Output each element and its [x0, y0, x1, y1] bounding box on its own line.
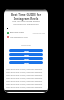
staticText: Low engagement hours: [10, 36, 28, 38]
staticText: Instagram Reels: [4, 17, 48, 21]
staticText: Lorem ipsum dolor sit amet, consectetur …: [6, 77, 46, 79]
staticText: and grow your audience fast: [4, 23, 48, 26]
staticText: Lorem ipsum dolor sit amet, consectetur …: [6, 92, 46, 93]
staticText: Lorem ipsum dolor sit amet, consectetur …: [6, 74, 46, 76]
staticText: Lorem ipsum dolor sit amet, consectetur …: [6, 71, 46, 73]
staticText: Open: [24, 58, 29, 60]
staticText: Open: [24, 50, 29, 52]
staticText: Lorem ipsum dolor sit amet, consectetur …: [6, 80, 46, 82]
button[interactable]: Open: [9, 49, 43, 52]
staticText: Open: [24, 54, 29, 56]
button[interactable]: Open: [9, 57, 43, 60]
staticText: updated just now: [32, 32, 45, 34]
staticText: Open: [24, 62, 29, 64]
staticText: Lorem ipsum dolor sit amet, consectetur …: [6, 68, 46, 70]
button[interactable]: Open: [9, 61, 43, 64]
staticText: Best Time GUIDE for: [4, 13, 48, 17]
staticText: Find your best posting window: [4, 20, 48, 23]
staticText: Lorem ipsum dolor sit amet, consectetur …: [6, 89, 46, 91]
staticText: Best time today: [10, 31, 24, 34]
staticText: Lorem ipsum dolor sit amet, consectetur …: [6, 86, 46, 88]
staticText: Choose a day: [4, 44, 48, 46]
staticText: Lorem ipsum dolor sit amet, consectetur …: [6, 83, 46, 85]
button[interactable]: Open: [9, 53, 43, 56]
